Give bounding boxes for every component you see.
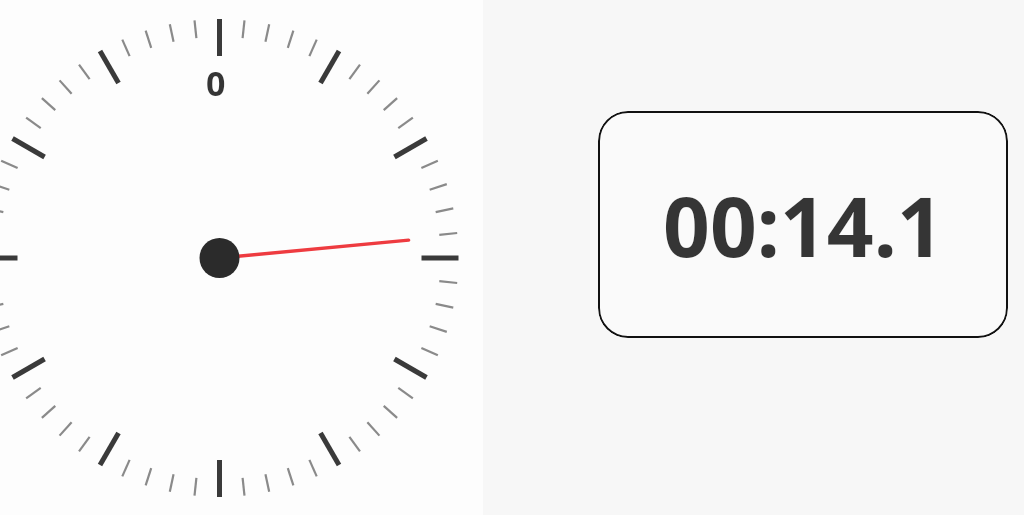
staticText: 0 bbox=[206, 60, 226, 106]
button[interactable]: Stopwatch dial, 14.1 seconds bbox=[0, 0, 483, 515]
staticText: 00:14.1 bbox=[663, 169, 944, 281]
button[interactable]: 00:14.1 bbox=[598, 111, 1008, 338]
